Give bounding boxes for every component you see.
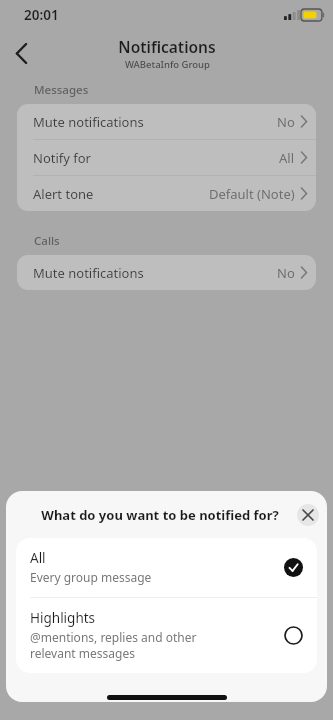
staticText: All (30, 549, 46, 567)
button[interactable]: Mute notifications (17, 255, 316, 290)
button[interactable]: Mute notifications (17, 104, 316, 139)
button[interactable]: Highlights (16, 598, 317, 673)
button[interactable]: All (16, 538, 317, 597)
staticText: Every group message (30, 569, 152, 585)
staticText: 20:01 (24, 6, 59, 24)
staticText: What do you want to be notified for? (41, 506, 279, 524)
staticText: All (279, 149, 295, 167)
staticText: No (277, 264, 295, 282)
button[interactable]: Notify for (17, 140, 316, 175)
staticText: WABetaInfo Group (125, 58, 210, 71)
staticText: Default (Note) (209, 185, 295, 203)
staticText: Mute notifications (33, 264, 144, 282)
staticText: Highlights (30, 609, 96, 627)
button[interactable]: Back (4, 36, 38, 70)
staticText: Mute notifications (33, 113, 144, 131)
button[interactable]: Close (297, 504, 319, 526)
button[interactable]: Alert tone (17, 176, 316, 211)
staticText: No (277, 113, 295, 131)
staticText: Calls (34, 233, 60, 249)
staticText: Notify for (33, 149, 91, 167)
staticText: Notifications (118, 36, 216, 57)
staticText: Messages (34, 82, 89, 98)
staticText: Alert tone (33, 185, 94, 203)
staticText: @mentions, replies and other relevant me… (30, 629, 197, 661)
